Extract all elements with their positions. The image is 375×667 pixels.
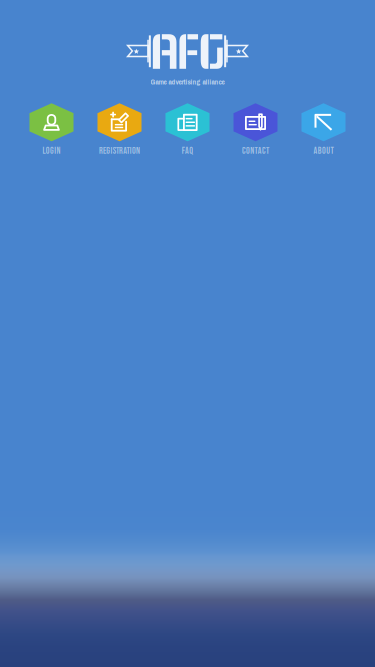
- staticText: FAQ: [182, 145, 193, 156]
- staticText: ABOUT: [314, 145, 333, 156]
- staticText: LOGIN: [43, 145, 60, 156]
- button[interactable]: ABOUT: [289, 103, 357, 157]
- button[interactable]: FAQ: [153, 103, 221, 157]
- staticText: CONTACT: [242, 145, 269, 156]
- staticText: REGISTRATION: [99, 145, 140, 156]
- staticText: Game advertising alliance: [150, 77, 224, 87]
- button[interactable]: LOGIN: [17, 103, 85, 157]
- button[interactable]: REGISTRATION: [85, 103, 153, 157]
- button[interactable]: CONTACT: [221, 103, 289, 157]
